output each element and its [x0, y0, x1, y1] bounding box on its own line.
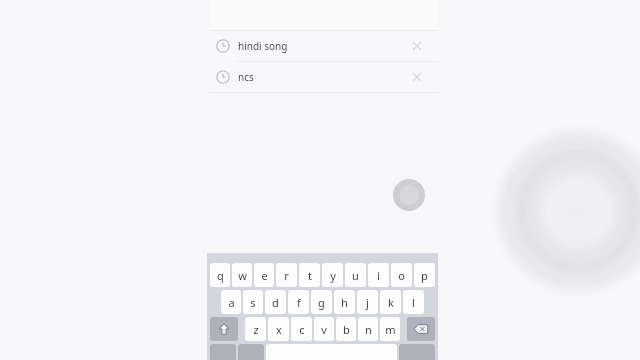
button[interactable]: b [336, 317, 356, 341]
staticText: w [238, 268, 247, 283]
button[interactable]: w [232, 263, 252, 287]
button[interactable]: hindi song [210, 31, 438, 61]
button[interactable]: f [288, 290, 309, 314]
staticText: n [365, 322, 372, 337]
button[interactable]: r [276, 263, 297, 287]
button[interactable]: g [311, 290, 332, 314]
button[interactable]: c [291, 317, 312, 341]
staticText: hindi song [238, 39, 288, 53]
button[interactable]: q [210, 263, 230, 287]
staticText: e [261, 268, 268, 283]
staticText: o [398, 268, 405, 283]
staticText: t [308, 268, 312, 283]
button[interactable]: Backspace [407, 317, 435, 341]
button[interactable]: n [358, 317, 378, 341]
staticText: r [284, 268, 289, 283]
staticText: h [341, 295, 348, 310]
staticText: d [272, 295, 279, 310]
button[interactable]: Remove hindi song [409, 38, 425, 54]
staticText: b [343, 322, 350, 337]
button[interactable]: m [380, 317, 400, 341]
button[interactable]: e [254, 263, 274, 287]
button[interactable]: h [334, 290, 355, 314]
staticText: i [377, 268, 380, 283]
staticText: g [318, 295, 325, 310]
staticText: u [352, 268, 359, 283]
staticText: ncs [238, 70, 254, 84]
staticText: s [250, 295, 256, 310]
button[interactable]: Remove ncs [409, 69, 425, 85]
staticText: p [421, 268, 428, 283]
staticText: z [253, 322, 259, 337]
staticText: m [385, 322, 396, 337]
staticText: k [388, 295, 394, 310]
staticText: y [330, 268, 336, 283]
button[interactable]: l [403, 290, 424, 314]
button[interactable]: ncs [210, 62, 438, 92]
staticText: c [299, 322, 305, 337]
staticText: x [276, 322, 282, 337]
button[interactable]: x [268, 317, 289, 341]
button[interactable]: a [221, 290, 241, 314]
button[interactable]: p [414, 263, 435, 287]
staticText: v [321, 322, 327, 337]
staticText: l [412, 295, 415, 310]
button[interactable]: d [265, 290, 286, 314]
staticText: j [366, 295, 369, 310]
button[interactable]: s [243, 290, 263, 314]
button[interactable]: i [368, 263, 389, 287]
button[interactable]: u [345, 263, 366, 287]
button[interactable]: t [299, 263, 320, 287]
button[interactable]: Record [393, 179, 425, 211]
staticText: f [297, 295, 301, 310]
staticText: q [217, 268, 224, 283]
button[interactable]: j [357, 290, 378, 314]
button[interactable]: k [380, 290, 401, 314]
button[interactable]: y [322, 263, 343, 287]
button[interactable]: Shift [210, 317, 238, 341]
button[interactable]: o [391, 263, 412, 287]
button[interactable]: v [314, 317, 334, 341]
button[interactable]: z [245, 317, 266, 341]
staticText: a [228, 295, 235, 310]
